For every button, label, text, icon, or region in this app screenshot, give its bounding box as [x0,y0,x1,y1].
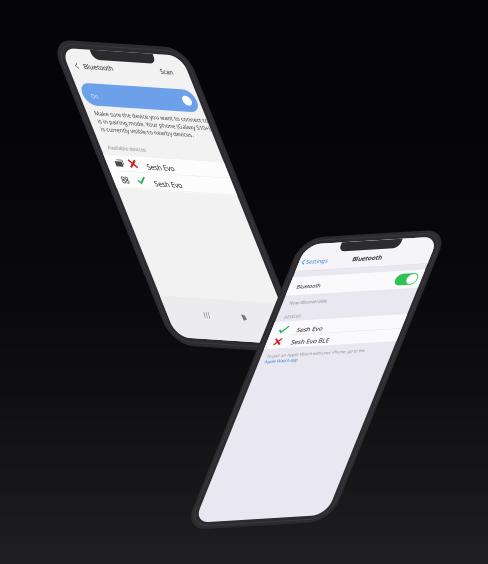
button[interactable]: On [71,141,413,202]
button[interactable]: Bluetooth [83,82,243,108]
button[interactable] [61,334,421,379]
button[interactable] [306,470,488,512]
staticText: Bluetooth [328,359,396,379]
staticText: Sesh Evo [182,393,264,419]
staticText: On [94,165,116,186]
staticText: DEVICES [327,449,376,465]
staticText: Now discoverable [326,407,434,425]
staticText: Settings [327,286,389,307]
staticText: Sesh Evo [179,348,261,374]
staticText: Bluetooth [108,82,196,107]
button[interactable] [306,512,488,549]
staticText: Available devices [82,305,197,324]
button[interactable]: Bluetooth [306,340,488,393]
staticText: Make sure the device you want to connect… [84,212,423,275]
button[interactable] [61,379,421,424]
button[interactable]: Settings [314,284,424,308]
